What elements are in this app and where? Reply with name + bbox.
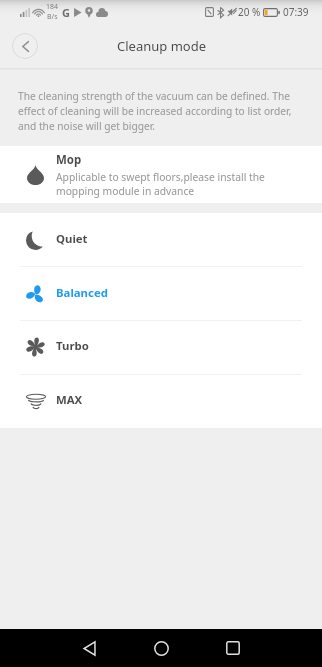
button[interactable]: Mop <box>0 146 322 203</box>
button[interactable]: Back <box>78 637 100 659</box>
staticText: 20 % <box>238 5 261 19</box>
staticText: Turbo <box>56 338 89 354</box>
staticText: 07:39 <box>283 5 309 19</box>
button[interactable]: Home <box>150 637 172 659</box>
staticText: Balanced <box>56 285 108 301</box>
button[interactable]: Quiet <box>0 213 322 267</box>
staticText: 184 <box>46 2 59 12</box>
button[interactable]: Balanced <box>0 267 322 321</box>
staticText: Applicable to swept floors,please instal… <box>56 170 272 198</box>
button[interactable]: Turbo <box>0 320 322 374</box>
staticText: Mop <box>56 152 82 168</box>
staticText: The cleaning strength of the vacuum can … <box>18 89 306 133</box>
button[interactable]: MAX <box>0 374 322 428</box>
button[interactable]: Back <box>12 33 38 59</box>
staticText: G <box>62 5 70 20</box>
staticText: B/s <box>47 12 58 22</box>
staticText: MAX <box>56 392 83 408</box>
staticText: Cleanup mode <box>117 37 206 55</box>
button[interactable]: Recents <box>222 637 244 659</box>
staticText: Quiet <box>56 231 88 247</box>
